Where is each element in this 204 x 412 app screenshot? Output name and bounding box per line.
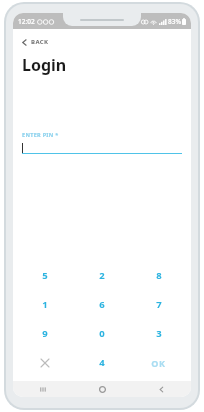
staticText: 8 <box>156 269 162 282</box>
staticText: 2 <box>99 269 105 282</box>
button[interactable]: OK <box>130 348 187 377</box>
staticText: 12:02 <box>18 17 35 26</box>
staticText: BACK <box>31 38 49 46</box>
button[interactable]: BACK <box>19 36 51 48</box>
staticText: 0 <box>99 327 105 340</box>
button[interactable]: Home <box>73 381 132 397</box>
staticText: 9 <box>42 327 48 340</box>
button[interactable]: 6 <box>73 290 130 319</box>
staticText: 3 <box>156 327 162 340</box>
staticText: 83% <box>168 17 181 26</box>
staticText: 1 <box>42 298 48 311</box>
button[interactable]: Delete <box>17 348 73 377</box>
button[interactable]: 1 <box>17 290 73 319</box>
button[interactable]: 2 <box>73 261 130 290</box>
button[interactable]: 8 <box>130 261 187 290</box>
staticText: 7 <box>156 298 162 311</box>
staticText: Login <box>22 54 67 76</box>
staticText: 5 <box>42 269 48 282</box>
button[interactable]: 7 <box>130 290 187 319</box>
staticText: 4 <box>99 356 105 369</box>
staticText: OK <box>151 357 166 369</box>
button[interactable]: 5 <box>17 261 73 290</box>
button[interactable]: 3 <box>130 319 187 348</box>
button[interactable]: 4 <box>73 348 130 377</box>
button[interactable]: Recent apps <box>13 381 73 397</box>
staticText: 6 <box>99 298 105 311</box>
button[interactable]: 0 <box>73 319 130 348</box>
button[interactable]: ENTER PIN * <box>22 131 182 154</box>
staticText: ENTER PIN * <box>22 131 59 138</box>
button[interactable]: 9 <box>17 319 73 348</box>
button[interactable]: Back <box>132 381 191 397</box>
